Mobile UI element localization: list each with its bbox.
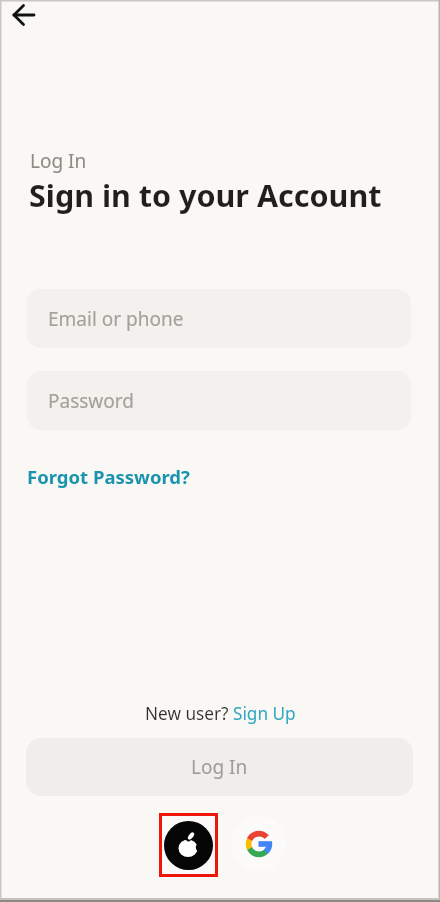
button[interactable] <box>159 813 218 877</box>
staticText: Log In <box>191 754 248 780</box>
button[interactable]: New user? Sign Up <box>145 702 296 725</box>
staticText: Email or phone <box>48 306 184 332</box>
button[interactable] <box>8 0 40 30</box>
staticText: New user? Sign Up <box>145 702 296 725</box>
button[interactable]: Password <box>27 371 411 430</box>
staticText: Sign in to your Account <box>29 174 382 216</box>
button[interactable]: Email or phone <box>27 289 411 348</box>
staticText: Password <box>48 388 134 414</box>
staticText: Forgot Password? <box>27 464 190 489</box>
button[interactable]: Forgot Password? <box>27 464 190 489</box>
button[interactable] <box>231 816 286 871</box>
staticText: Log In <box>30 148 87 174</box>
button[interactable]: Log In <box>26 738 413 796</box>
